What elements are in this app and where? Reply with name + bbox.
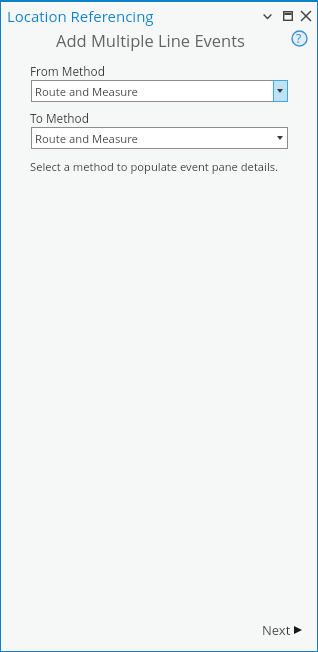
button[interactable]: Route and Measure (31, 127, 288, 149)
staticText: Location Referencing (7, 6, 154, 26)
staticText: Select a method to populate event pane d… (30, 159, 318, 174)
staticText: From Method (30, 63, 105, 79)
button[interactable]: Help (289, 28, 309, 48)
button[interactable]: Collapse (256, 4, 278, 28)
staticText: ? (296, 30, 302, 46)
staticText: Add Multiple Line Events (56, 29, 245, 51)
button[interactable]: Close (297, 4, 315, 28)
button[interactable]: Route and Measure (31, 80, 288, 102)
button[interactable]: Next (258, 617, 306, 643)
button[interactable]: Maximize (278, 4, 297, 28)
staticText: Next (262, 621, 291, 639)
staticText: To Method (30, 110, 89, 126)
staticText: Route and Measure (35, 131, 138, 146)
staticText: Route and Measure (35, 84, 138, 99)
